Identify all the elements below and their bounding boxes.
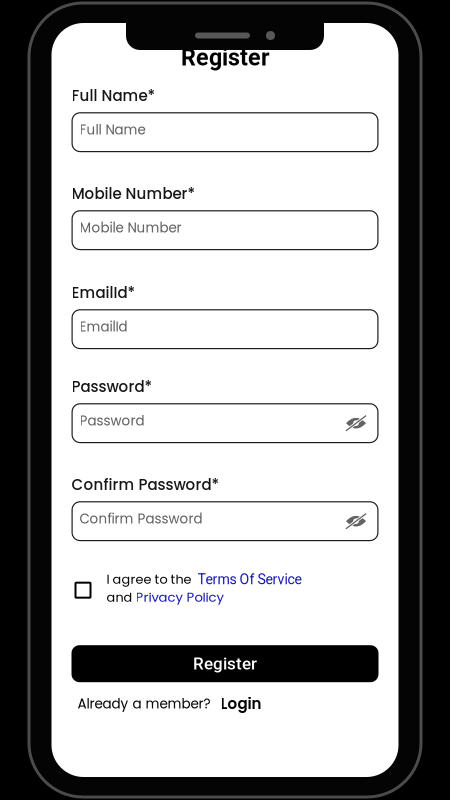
button[interactable]: I agree to the terms — [71, 582, 106, 599]
staticText: Confirm Password* — [71, 474, 219, 495]
button[interactable]: Login — [220, 693, 261, 714]
staticText: Privacy Policy — [135, 588, 223, 606]
staticText: EmailId* — [71, 282, 135, 303]
staticText: Password* — [71, 376, 152, 397]
button[interactable]: Privacy Policy — [135, 588, 223, 606]
staticText: Register — [193, 654, 257, 674]
staticText: EmailId — [79, 317, 127, 336]
staticText: Mobile Number — [79, 218, 181, 237]
button[interactable]: Register — [71, 645, 378, 682]
button[interactable]: Password — [71, 403, 378, 443]
staticText: Login — [220, 693, 261, 714]
button[interactable]: EmailId — [71, 309, 378, 349]
staticText: Confirm Password — [79, 509, 202, 528]
staticText: Password — [79, 411, 144, 430]
button[interactable]: Full Name — [71, 112, 378, 152]
staticText: Mobile Number* — [71, 183, 195, 204]
staticText: Already a member? — [77, 694, 210, 713]
staticText: Full Name — [79, 120, 145, 139]
staticText: Terms Of Service — [197, 571, 301, 588]
button[interactable]: Confirm Password — [71, 501, 378, 541]
button[interactable]: Terms Of Service — [197, 571, 301, 587]
staticText: and — [106, 588, 135, 606]
button[interactable]: Mobile Number — [71, 210, 378, 250]
staticText: Register — [181, 44, 269, 71]
staticText: I agree to the — [106, 570, 197, 588]
staticText: Full Name* — [71, 85, 155, 106]
